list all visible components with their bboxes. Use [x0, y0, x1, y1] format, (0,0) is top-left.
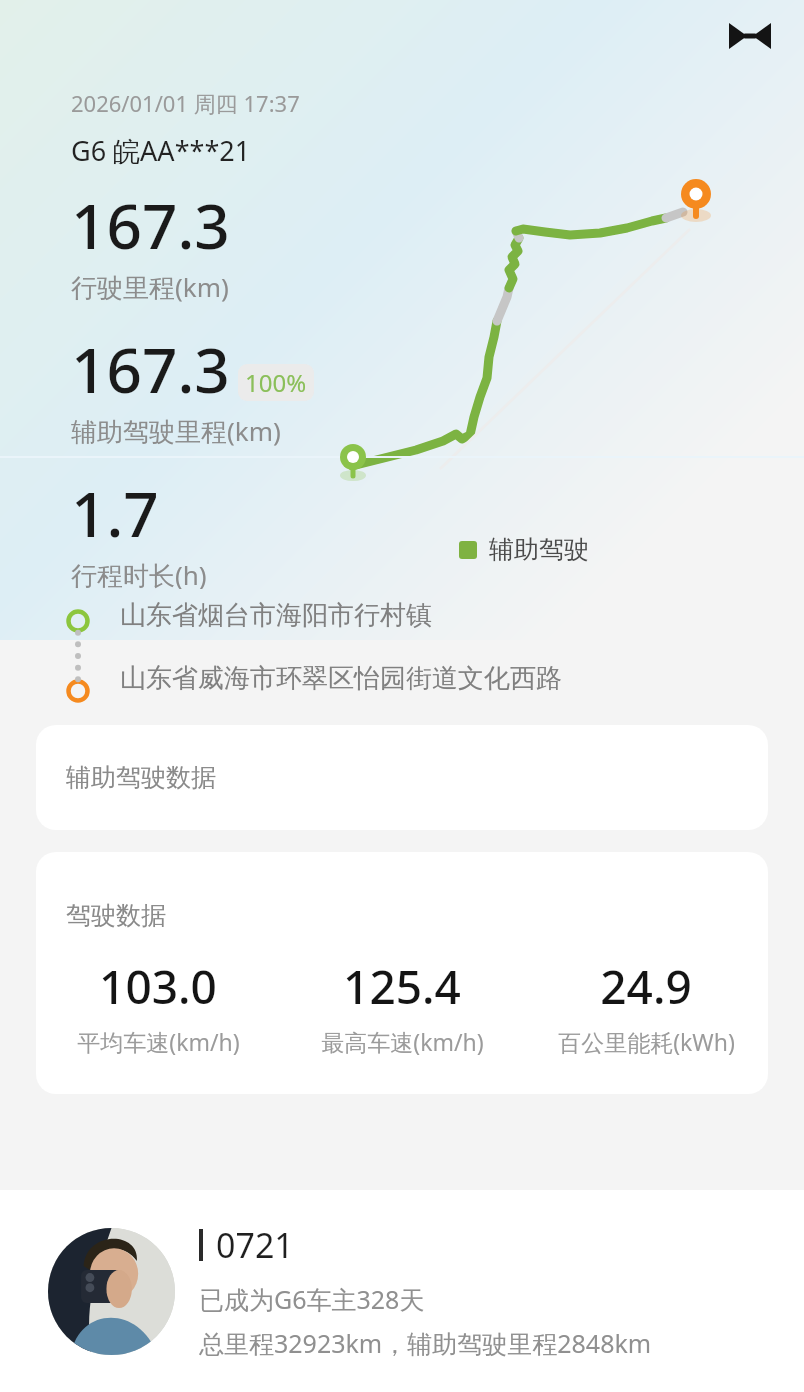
staticText: 最高车速(km/h) [321, 1026, 484, 1057]
staticText: 167.3 [71, 183, 230, 267]
button[interactable]: Close [724, 10, 776, 62]
staticText: 167.3 [71, 327, 230, 411]
button[interactable]: 辅助驾驶数据 [36, 725, 768, 830]
staticText: 辅助驾驶数据 [66, 762, 216, 793]
staticText: 山东省烟台市海阳市行村镇 [120, 599, 432, 632]
staticText: 辅助驾驶 [489, 534, 589, 565]
staticText: 行程时长(h) [71, 557, 207, 589]
button[interactable]: 0721 [0, 1190, 804, 1392]
staticText: 辅助驾驶里程(km) [71, 413, 281, 449]
staticText: 山东省威海市环翠区怡园街道文化西路 [120, 662, 562, 695]
staticText: 总里程32923km，辅助驾驶里程2848km [199, 1326, 652, 1360]
staticText: 103.0 [99, 955, 217, 1018]
staticText: G6 皖AA***21 [71, 132, 251, 169]
staticText: 24.9 [600, 955, 692, 1018]
staticText: 行驶里程(km) [71, 269, 229, 305]
staticText: 平均车速(km/h) [77, 1026, 240, 1057]
staticText: 驾驶数据 [66, 900, 166, 931]
button[interactable]: 驾驶数据 [36, 852, 768, 1094]
staticText: 100% [245, 366, 307, 399]
staticText: 1.7 [71, 471, 159, 555]
staticText: 百公里能耗(kWh) [558, 1026, 735, 1057]
staticText: 125.4 [343, 955, 461, 1018]
staticText: 2026/01/01 周四 17:37 [71, 88, 300, 118]
staticText: 已成为G6车主328天 [199, 1282, 425, 1316]
staticText: 0721 [216, 1222, 294, 1268]
